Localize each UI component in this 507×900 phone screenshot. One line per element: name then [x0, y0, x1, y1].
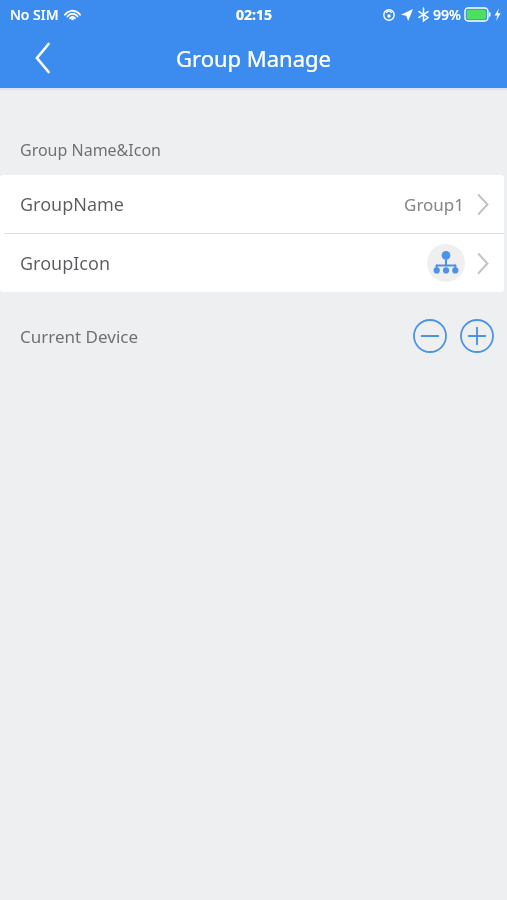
staticText: No SIM	[10, 5, 59, 24]
button[interactable]: GroupIcon	[0, 234, 504, 292]
staticText: GroupIcon	[20, 251, 111, 276]
button[interactable]: Remove device	[413, 319, 447, 353]
staticText: Group Manage	[176, 43, 331, 73]
button[interactable]: Add device	[460, 319, 494, 353]
staticText: Group Name&Icon	[20, 139, 162, 161]
staticText: Current Device	[20, 325, 139, 348]
button[interactable]: Back	[22, 37, 64, 79]
staticText: GroupName	[20, 192, 125, 217]
staticText: 99%	[433, 5, 461, 24]
staticText: Group1	[404, 193, 465, 216]
button[interactable]: GroupName	[0, 175, 504, 233]
staticText: 02:15	[236, 5, 272, 24]
